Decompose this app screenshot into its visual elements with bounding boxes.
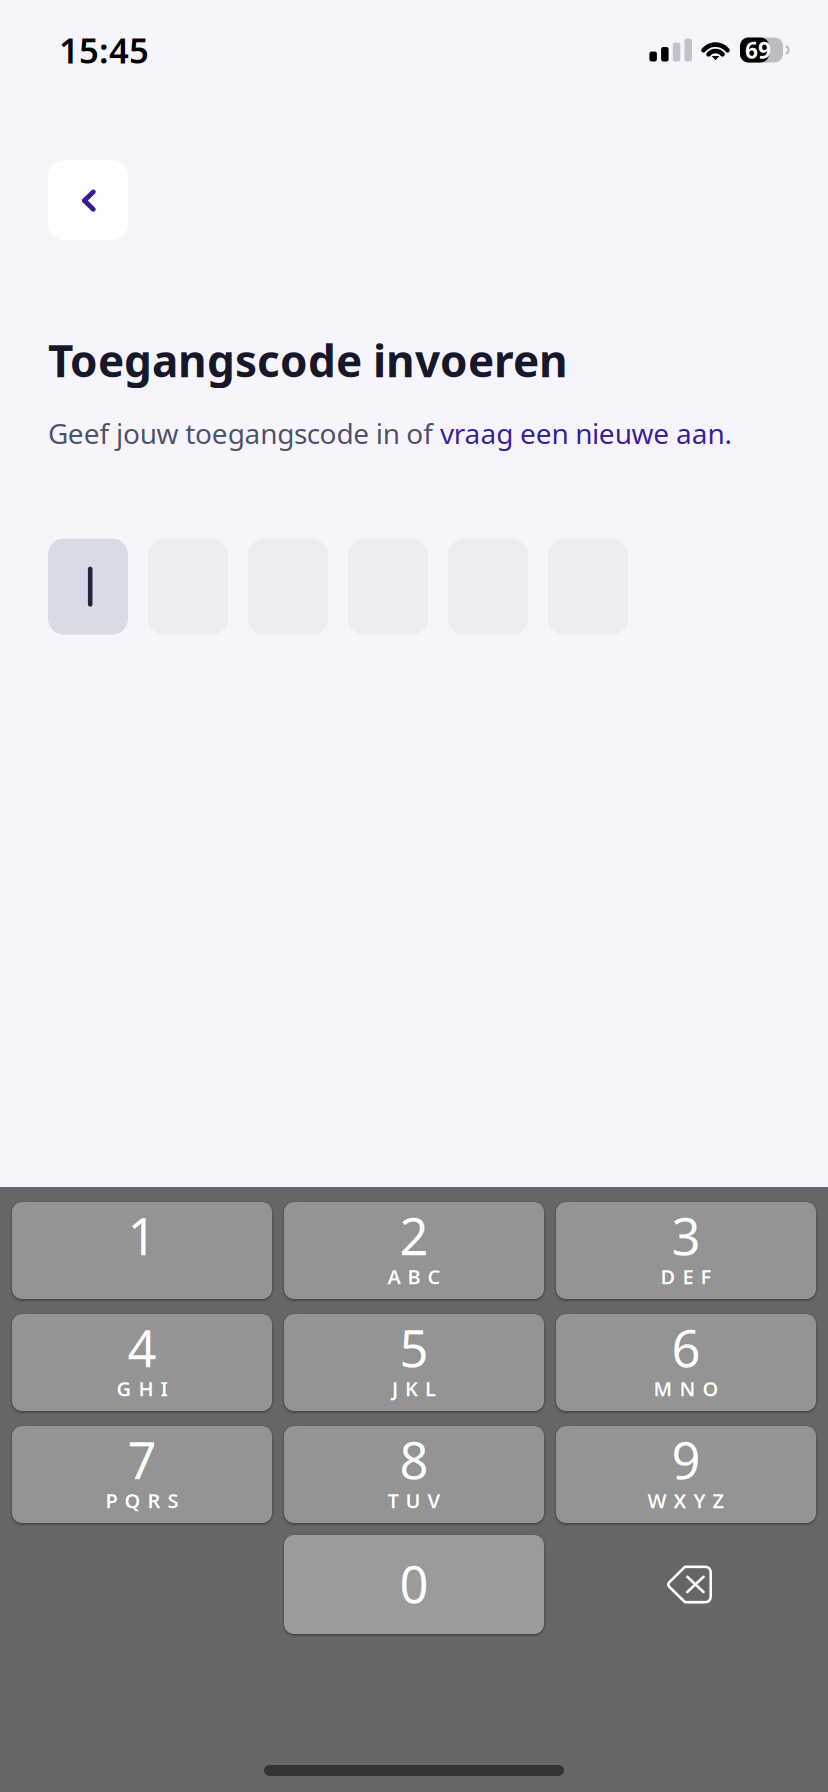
- staticText: TUV: [387, 1487, 440, 1514]
- staticText: 1: [127, 1202, 156, 1269]
- button[interactable]: 7 PQRS: [12, 1426, 272, 1523]
- button[interactable]: 4 GHI: [12, 1314, 272, 1411]
- button[interactable]: 6 MNO: [556, 1314, 816, 1411]
- staticText: 0: [399, 1550, 428, 1617]
- button[interactable]: 2 ABC: [284, 1202, 544, 1299]
- staticText: 8: [399, 1426, 428, 1493]
- staticText: WXYZ: [647, 1487, 724, 1514]
- staticText: 4: [127, 1314, 156, 1381]
- staticText: PQRS: [105, 1487, 178, 1514]
- staticText: MNO: [653, 1375, 718, 1402]
- staticText: Toegangscode invoeren: [48, 331, 568, 389]
- staticText: 2: [399, 1202, 428, 1269]
- staticText: 7: [127, 1426, 156, 1493]
- button[interactable]: 3 DEF: [556, 1202, 816, 1299]
- button[interactable]: Delete: [556, 1535, 816, 1634]
- staticText: 3: [671, 1202, 700, 1269]
- staticText: JKL: [392, 1375, 436, 1402]
- button[interactable]: 1: [12, 1202, 272, 1299]
- button[interactable]: 8 TUV: [284, 1426, 544, 1523]
- staticText: 69: [745, 35, 771, 65]
- button[interactable]: Back: [48, 160, 128, 240]
- staticText: vraag een nieuwe aan.: [440, 414, 732, 452]
- staticText: 5: [399, 1314, 428, 1381]
- staticText: ABC: [387, 1263, 440, 1290]
- staticText: DEF: [660, 1263, 711, 1290]
- button[interactable]: 9 WXYZ: [556, 1426, 816, 1523]
- staticText: 15:45: [59, 27, 149, 73]
- staticText: Geef jouw toegangscode in of: [48, 414, 440, 452]
- button[interactable]: Passcode digit 1: [48, 539, 128, 635]
- button[interactable]: 0: [284, 1535, 544, 1634]
- staticText: GHI: [116, 1375, 167, 1402]
- staticText: 9: [671, 1426, 700, 1493]
- staticText: 6: [671, 1314, 700, 1381]
- button[interactable]: 5 JKL: [284, 1314, 544, 1411]
